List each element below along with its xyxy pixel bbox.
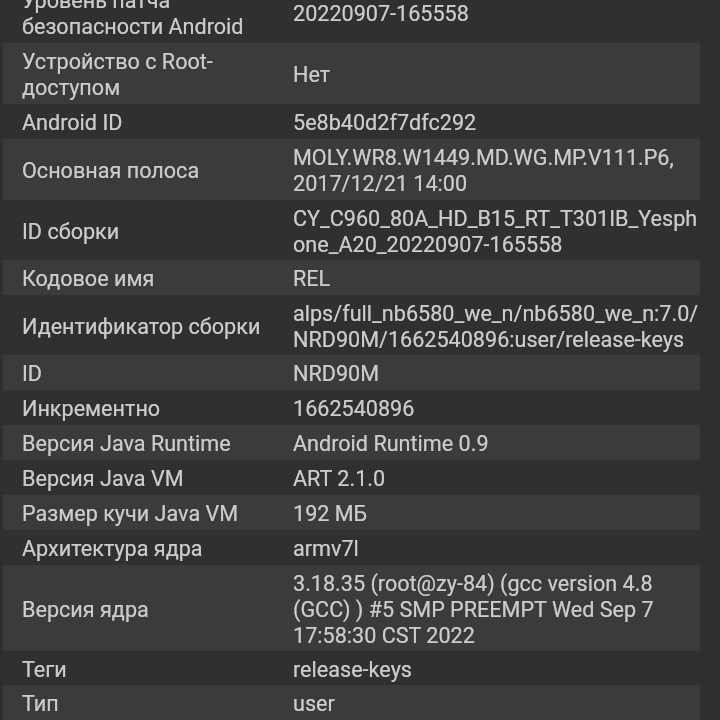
button[interactable]: ID [3, 355, 700, 390]
button[interactable]: Идентификатор сборки [3, 295, 700, 355]
staticText: MOLY.WR8.W1449.MD.WG.MP.V111.P6, 2017/12… [293, 145, 700, 196]
staticText: Теги [22, 657, 67, 682]
staticText: ID сборки [22, 219, 120, 244]
button[interactable]: Уровень патча безопасности Android [3, 0, 700, 43]
staticText: ART 2.1.0 [293, 466, 386, 491]
button[interactable]: Теги [3, 651, 700, 685]
staticText: 20220907-165558 [293, 1, 469, 26]
button[interactable]: Версия ядра [3, 565, 700, 651]
staticText: 3.18.35 (root@zy-84) (gcc version 4.8 (G… [293, 571, 700, 648]
button[interactable]: Кодовое имя [3, 260, 700, 295]
staticText: Версия Java Runtime [22, 431, 231, 456]
staticText: Кодовое имя [22, 266, 155, 291]
button[interactable]: Инкрементно [3, 390, 700, 425]
staticText: Нет [293, 62, 331, 87]
staticText: Идентификатор сборки [22, 314, 261, 339]
staticText: CY_C960_80A_HD_B15_RT_T301IB_Yesphone_A2… [293, 206, 700, 257]
staticText: Размер кучи Java VM [22, 501, 239, 526]
staticText: Android ID [22, 110, 123, 135]
button[interactable]: ID сборки [3, 200, 700, 260]
staticText: 1662540896 [293, 396, 415, 421]
staticText: REL [293, 266, 331, 291]
button[interactable]: Android ID [3, 104, 700, 139]
staticText: alps/full_nb6580_we_n/nb6580_we_n:7.0/NR… [293, 301, 700, 352]
staticText: Версия Java VM [22, 466, 184, 491]
button[interactable]: Тип [3, 685, 700, 720]
staticText: NRD90M [293, 361, 380, 386]
staticText: Android Runtime 0.9 [293, 431, 489, 456]
staticText: Основная полоса [22, 158, 200, 183]
staticText: Тип [22, 691, 59, 716]
staticText: armv7l [293, 536, 359, 561]
staticText: 5e8b40d2f7dfc292 [293, 110, 477, 135]
staticText: Версия ядра [22, 597, 149, 622]
button[interactable]: Размер кучи Java VM [3, 495, 700, 530]
staticText: Архитектура ядра [22, 536, 203, 561]
staticText: user [293, 691, 335, 716]
staticText: Устройство с Root-доступом [22, 49, 293, 100]
staticText: release-keys [293, 657, 412, 682]
button[interactable]: Версия Java Runtime [3, 425, 700, 460]
button[interactable]: Версия Java VM [3, 460, 700, 495]
staticText: Уровень патча безопасности Android [22, 0, 293, 39]
staticText: ID [22, 361, 43, 386]
staticText: 192 МБ [293, 501, 368, 526]
button[interactable]: Устройство с Root-доступом [3, 43, 700, 104]
button[interactable]: Архитектура ядра [3, 530, 700, 565]
button[interactable]: Основная полоса [3, 139, 700, 200]
staticText: Инкрементно [22, 396, 161, 421]
